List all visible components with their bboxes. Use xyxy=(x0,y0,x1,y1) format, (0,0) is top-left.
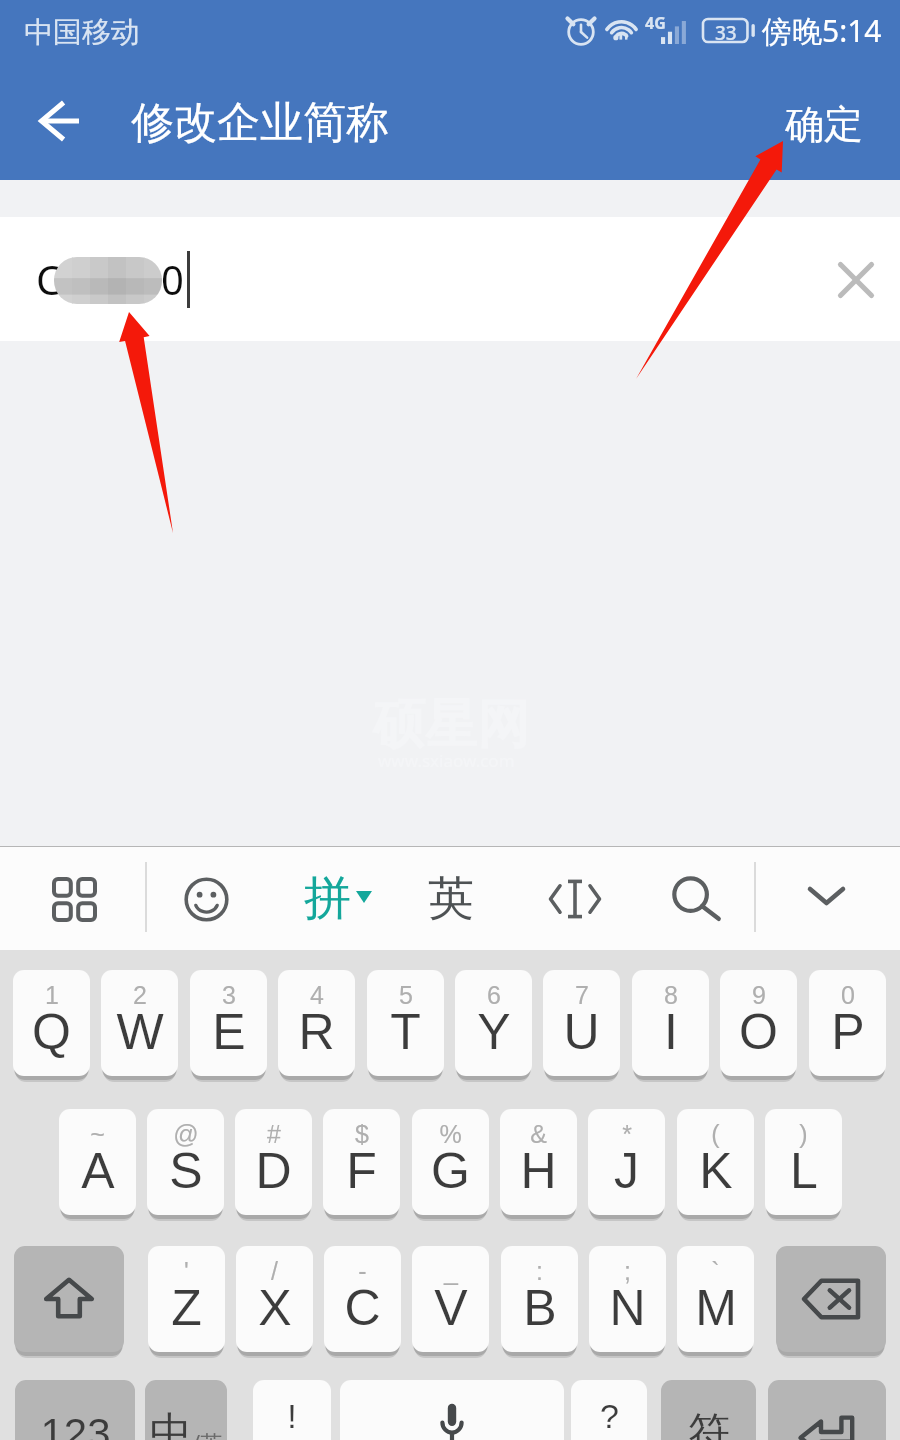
button[interactable]: ( xyxy=(677,1109,754,1215)
staticText: ` xyxy=(711,1257,720,1285)
button[interactable]: 3 xyxy=(190,970,267,1076)
staticText: @ xyxy=(173,1120,199,1148)
staticText: O xyxy=(739,1004,778,1060)
staticText: 4G xyxy=(645,12,666,34)
button[interactable]: / xyxy=(236,1246,313,1352)
staticText: ) xyxy=(799,1120,808,1148)
staticText: 0 xyxy=(161,252,184,306)
button[interactable]: 确定 xyxy=(762,68,886,180)
other: enter xyxy=(797,1409,857,1440)
staticText: 9 xyxy=(752,981,766,1009)
button[interactable]: 英 xyxy=(415,853,487,945)
other: shift xyxy=(39,1275,99,1323)
button[interactable]: 2 xyxy=(101,970,178,1076)
button[interactable]: 5 xyxy=(367,970,444,1076)
button[interactable]: 1 xyxy=(13,970,90,1076)
button[interactable]: Hide keyboard xyxy=(784,850,868,942)
staticText: 5 xyxy=(399,981,413,1009)
button[interactable]: - xyxy=(324,1246,401,1352)
button[interactable]: 4 xyxy=(278,970,355,1076)
staticText: M xyxy=(695,1280,737,1336)
staticText: & xyxy=(530,1120,547,1148)
staticText: N xyxy=(609,1280,646,1336)
button[interactable]: 7 xyxy=(543,970,620,1076)
staticText: 傍晚5:14 xyxy=(762,10,882,51)
staticText: : xyxy=(536,1257,543,1285)
staticText: 33 xyxy=(715,20,737,46)
button[interactable]: * xyxy=(588,1109,665,1215)
button[interactable]: ; xyxy=(589,1246,666,1352)
staticText: 拼 xyxy=(304,869,351,928)
staticText: V xyxy=(434,1280,468,1336)
staticText: Q xyxy=(32,1004,71,1060)
staticText: 4 xyxy=(310,981,324,1009)
staticText: K xyxy=(699,1143,733,1199)
staticText: 0 xyxy=(841,981,855,1009)
staticText: C xyxy=(36,252,62,306)
staticText: % xyxy=(439,1120,462,1148)
button[interactable]: shift xyxy=(14,1246,124,1352)
button[interactable]: 拼 xyxy=(292,853,384,945)
button[interactable]: ` xyxy=(677,1246,754,1352)
staticText: - xyxy=(358,1257,367,1285)
staticText: # xyxy=(267,1120,281,1148)
button[interactable]: 9 xyxy=(720,970,797,1076)
button[interactable]: enter xyxy=(768,1380,886,1440)
button[interactable]: ) xyxy=(765,1109,842,1215)
staticText: ( xyxy=(711,1120,720,1148)
button[interactable]: : xyxy=(501,1246,578,1352)
staticText: E xyxy=(212,1004,246,1060)
button[interactable]: 符 xyxy=(661,1380,756,1440)
staticText: ~ xyxy=(90,1120,105,1148)
button[interactable]: Emoji xyxy=(160,854,252,944)
staticText: / xyxy=(271,1257,278,1285)
button[interactable]: % xyxy=(412,1109,489,1215)
staticText: /英 xyxy=(192,1427,223,1440)
button[interactable]: Move cursor xyxy=(534,853,616,945)
button[interactable]: @ xyxy=(147,1109,224,1215)
button[interactable]: # xyxy=(235,1109,312,1215)
button[interactable]: $ xyxy=(323,1109,400,1215)
staticText: 3 xyxy=(222,981,236,1009)
button[interactable]: Search xyxy=(655,853,737,945)
staticText: ' xyxy=(184,1257,189,1285)
staticText: 123 xyxy=(40,1410,111,1440)
button[interactable]: & xyxy=(500,1109,577,1215)
staticText: _ xyxy=(444,1257,458,1285)
staticText: 英 xyxy=(428,870,474,928)
button[interactable]: _ xyxy=(412,1246,489,1352)
button[interactable]: 8 xyxy=(632,970,709,1076)
staticText: 8 xyxy=(664,981,678,1009)
staticText: B xyxy=(523,1280,557,1336)
button[interactable]: ~ xyxy=(59,1109,136,1215)
button[interactable]: 6 xyxy=(455,970,532,1076)
button[interactable]: ! xyxy=(253,1380,331,1440)
staticText: 1 xyxy=(45,981,59,1009)
staticText: ? xyxy=(600,1397,619,1435)
staticText: P xyxy=(831,1004,865,1060)
staticText: I xyxy=(664,1004,678,1060)
button[interactable]: del xyxy=(776,1246,886,1352)
other: del xyxy=(801,1275,861,1323)
button[interactable]: Back xyxy=(8,68,116,180)
button[interactable]: 中 xyxy=(145,1380,227,1440)
staticText: L xyxy=(790,1143,818,1199)
staticText: F xyxy=(346,1143,377,1199)
button[interactable]: ' xyxy=(148,1246,225,1352)
button[interactable]: mic xyxy=(340,1380,564,1440)
staticText: 6 xyxy=(487,981,501,1009)
button[interactable]: ? xyxy=(571,1380,647,1440)
staticText: * xyxy=(622,1120,632,1148)
button[interactable]: Keyboard layouts xyxy=(24,853,124,945)
staticText: ! xyxy=(287,1397,297,1435)
other: mic xyxy=(422,1399,482,1440)
staticText: R xyxy=(298,1004,335,1060)
staticText: T xyxy=(390,1004,421,1060)
button[interactable]: 123 xyxy=(15,1380,135,1440)
button[interactable]: 0 xyxy=(809,970,886,1076)
button[interactable]: Clear text xyxy=(814,238,898,322)
staticText: 确定 xyxy=(785,100,863,149)
staticText: J xyxy=(614,1143,639,1199)
